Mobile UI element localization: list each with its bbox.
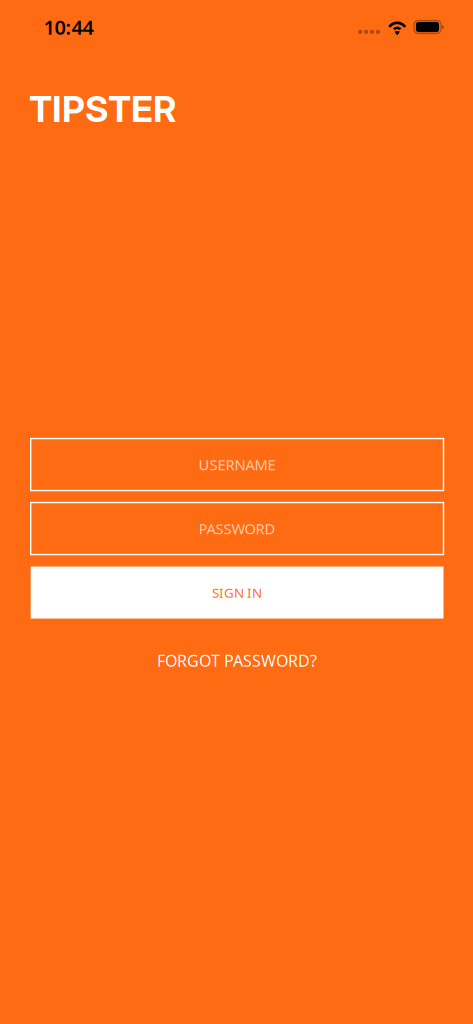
button[interactable]: SIGN IN bbox=[31, 567, 443, 619]
button[interactable]: PASSWORD bbox=[31, 503, 443, 555]
button[interactable]: USERNAME bbox=[31, 439, 443, 491]
button[interactable]: FORGOT PASSWORD? bbox=[31, 650, 443, 672]
staticText: TIPSTER bbox=[29, 87, 176, 131]
staticText: SIGN IN bbox=[212, 584, 262, 601]
staticText: USERNAME bbox=[199, 455, 276, 474]
staticText: FORGOT PASSWORD? bbox=[157, 650, 317, 671]
staticText: 10:44 bbox=[43, 14, 93, 40]
staticText: PASSWORD bbox=[199, 519, 276, 538]
